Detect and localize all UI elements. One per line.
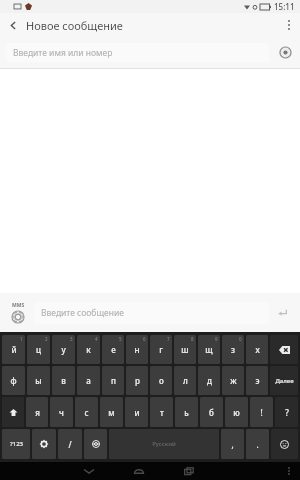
button[interactable]: б: [200, 397, 223, 427]
button[interactable]: м: [100, 397, 123, 427]
button[interactable]: 2: [27, 335, 50, 364]
button[interactable]: Удалить: [270, 335, 298, 364]
button[interactable]: Недавние приложения: [164, 462, 214, 480]
button[interactable]: !: [250, 397, 273, 427]
button[interactable]: ж: [222, 366, 244, 395]
staticText: п: [111, 375, 116, 386]
staticText: с: [84, 407, 89, 418]
button[interactable]: ы: [27, 366, 50, 395]
button[interactable]: Меню: [278, 462, 300, 480]
staticText: .: [256, 439, 259, 450]
button[interactable]: 7: [150, 335, 172, 364]
staticText: р: [135, 375, 140, 386]
staticText: Введите сообщение: [41, 307, 124, 319]
staticText: 4: [95, 336, 98, 342]
staticText: к: [86, 344, 91, 355]
staticText: ?: [285, 407, 289, 418]
staticText: й: [11, 344, 17, 355]
staticText: 2: [45, 336, 48, 342]
button[interactable]: Ещё: [278, 13, 300, 37]
button[interactable]: ?123: [2, 429, 30, 459]
button[interactable]: Назад: [0, 13, 26, 37]
staticText: 15:11: [274, 1, 295, 12]
button[interactable]: о: [150, 366, 172, 395]
button[interactable]: х: [246, 335, 268, 364]
staticText: ч: [59, 407, 64, 418]
staticText: г: [159, 344, 163, 355]
button[interactable]: ч: [50, 397, 73, 427]
staticText: щ: [205, 344, 213, 355]
staticText: ю: [233, 407, 240, 418]
button[interactable]: 0: [222, 335, 244, 364]
button[interactable]: я: [26, 397, 48, 427]
button[interactable]: 6: [126, 335, 148, 364]
button[interactable]: Регистр: [2, 397, 24, 427]
button[interactable]: 3: [52, 335, 75, 364]
button[interactable]: д: [198, 366, 220, 395]
staticText: х: [255, 344, 260, 355]
staticText: л: [183, 375, 188, 386]
staticText: е: [111, 344, 116, 355]
staticText: а: [86, 375, 91, 386]
staticText: ,: [231, 439, 234, 450]
button[interactable]: в: [52, 366, 75, 395]
button[interactable]: Эмодзи: [271, 429, 298, 459]
staticText: 9: [215, 336, 218, 342]
button[interactable]: р: [126, 366, 148, 395]
button[interactable]: ф: [2, 366, 25, 395]
button[interactable]: Введите сообщение: [34, 302, 269, 324]
button[interactable]: Далее: [270, 366, 298, 395]
button[interactable]: п: [102, 366, 124, 395]
staticText: 6: [143, 336, 146, 342]
button[interactable]: 4: [77, 335, 100, 364]
button[interactable]: Вложение: [5, 302, 31, 323]
staticText: д: [207, 375, 212, 386]
staticText: /: [68, 439, 72, 450]
button[interactable]: ь: [175, 397, 198, 427]
staticText: н: [134, 344, 140, 355]
button[interactable]: т: [150, 397, 173, 427]
staticText: з: [231, 344, 235, 355]
staticText: б: [209, 407, 214, 418]
button[interactable]: Главный экран: [114, 462, 164, 480]
staticText: Русский: [152, 440, 176, 448]
staticText: 1: [20, 336, 23, 342]
button[interactable]: Отправить: [269, 293, 295, 332]
button[interactable]: с: [75, 397, 98, 427]
staticText: ф: [10, 375, 17, 386]
staticText: 8: [191, 336, 194, 342]
button[interactable]: ю: [225, 397, 248, 427]
staticText: э: [255, 375, 260, 386]
button[interactable]: /: [58, 429, 82, 459]
button[interactable]: Настройки: [32, 429, 56, 459]
button[interactable]: 5: [102, 335, 124, 364]
button[interactable]: Скрыть клавиатуру: [64, 462, 114, 480]
button[interactable]: и: [125, 397, 148, 427]
button[interactable]: л: [174, 366, 196, 395]
staticText: 3: [70, 336, 73, 342]
staticText: и: [134, 407, 140, 418]
button[interactable]: ,: [221, 429, 244, 459]
staticText: м: [108, 407, 115, 418]
staticText: в: [61, 375, 66, 386]
staticText: я: [35, 407, 40, 418]
staticText: ш: [181, 344, 189, 355]
button[interactable]: 1: [2, 335, 25, 364]
staticText: т: [160, 407, 164, 418]
button[interactable]: 9: [198, 335, 220, 364]
button[interactable]: 8: [174, 335, 196, 364]
staticText: ь: [184, 407, 189, 418]
staticText: ы: [35, 375, 42, 386]
button[interactable]: Русский: [109, 429, 219, 459]
button[interactable]: Введите имя или номер: [6, 43, 269, 62]
button[interactable]: э: [246, 366, 268, 395]
button[interactable]: ?: [275, 397, 298, 427]
staticText: Введите имя или номер: [13, 47, 113, 59]
staticText: о: [159, 375, 164, 386]
button[interactable]: Добавить получателя: [277, 44, 294, 61]
button[interactable]: а: [77, 366, 100, 395]
button[interactable]: .: [246, 429, 269, 459]
button[interactable]: Сменить язык: [84, 429, 107, 459]
staticText: Далее: [275, 377, 294, 385]
staticText: 0: [239, 336, 242, 342]
